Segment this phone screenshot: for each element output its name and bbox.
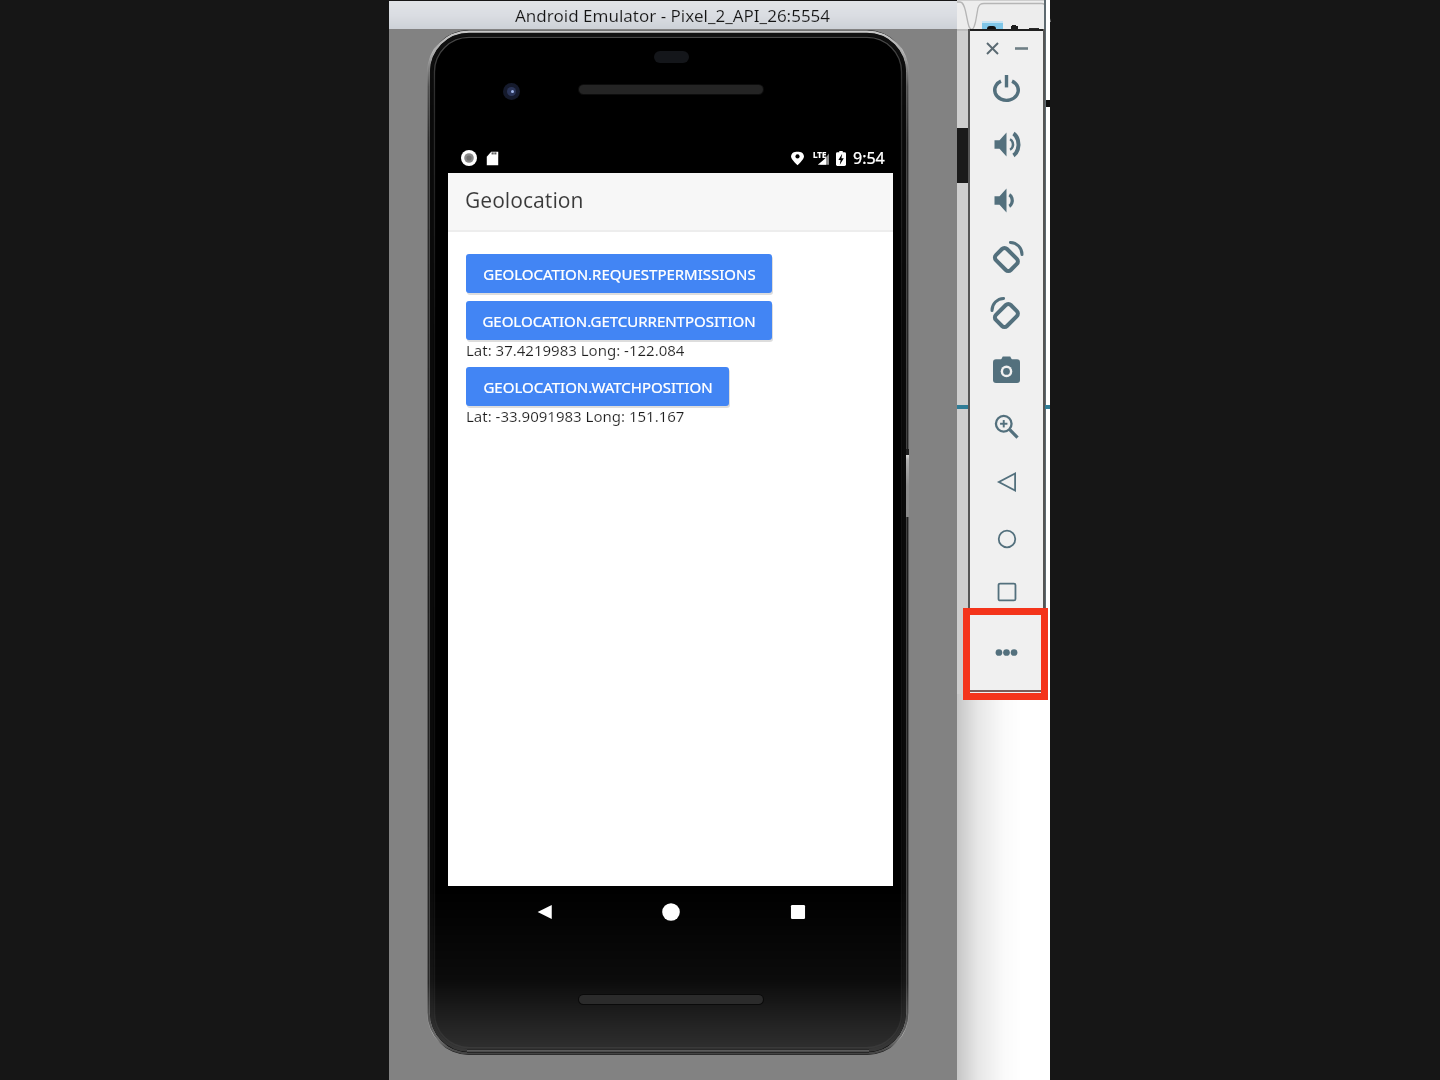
button[interactable]: More options — [970, 628, 1043, 676]
button[interactable]: GEOLOCATION.GETCURRENTPOSITION — [466, 301, 772, 340]
button[interactable]: Close — [977, 33, 1007, 63]
button[interactable]: Recent apps — [778, 892, 818, 932]
button[interactable]: Home — [651, 892, 691, 932]
button[interactable]: Power — [970, 64, 1043, 112]
button[interactable]: Zoom — [970, 402, 1043, 450]
staticText: Android Emulator - Pixel_2_API_26:5554 — [515, 4, 831, 27]
staticText: Geolocation — [465, 186, 584, 215]
staticText: 9:54 — [853, 147, 885, 169]
staticText: Lat: 37.4219983 Long: -122.084 — [466, 340, 685, 360]
button[interactable]: Rotate left — [970, 234, 1043, 282]
button[interactable]: Back — [970, 458, 1043, 506]
staticText: GEOLOCATION.GETCURRENTPOSITION — [482, 311, 756, 331]
staticText: LTE — [813, 149, 827, 160]
button[interactable]: GEOLOCATION.WATCHPOSITION — [466, 367, 729, 406]
button[interactable]: Overview — [970, 568, 1043, 616]
button[interactable]: Rotate right — [970, 290, 1043, 338]
button[interactable]: Volume up — [970, 120, 1043, 168]
button[interactable]: GEOLOCATION.REQUESTPERMISSIONS — [466, 254, 772, 293]
button[interactable]: Home — [970, 515, 1043, 563]
button[interactable]: Back — [525, 892, 565, 932]
button[interactable]: Minimize — [1006, 33, 1036, 63]
button[interactable]: Take screenshot — [970, 345, 1043, 393]
staticText: GEOLOCATION.REQUESTPERMISSIONS — [483, 264, 756, 284]
staticText: GEOLOCATION.WATCHPOSITION — [483, 377, 713, 397]
staticText: Lat: -33.9091983 Long: 151.167 — [466, 406, 685, 426]
button[interactable]: Volume down — [970, 176, 1043, 224]
